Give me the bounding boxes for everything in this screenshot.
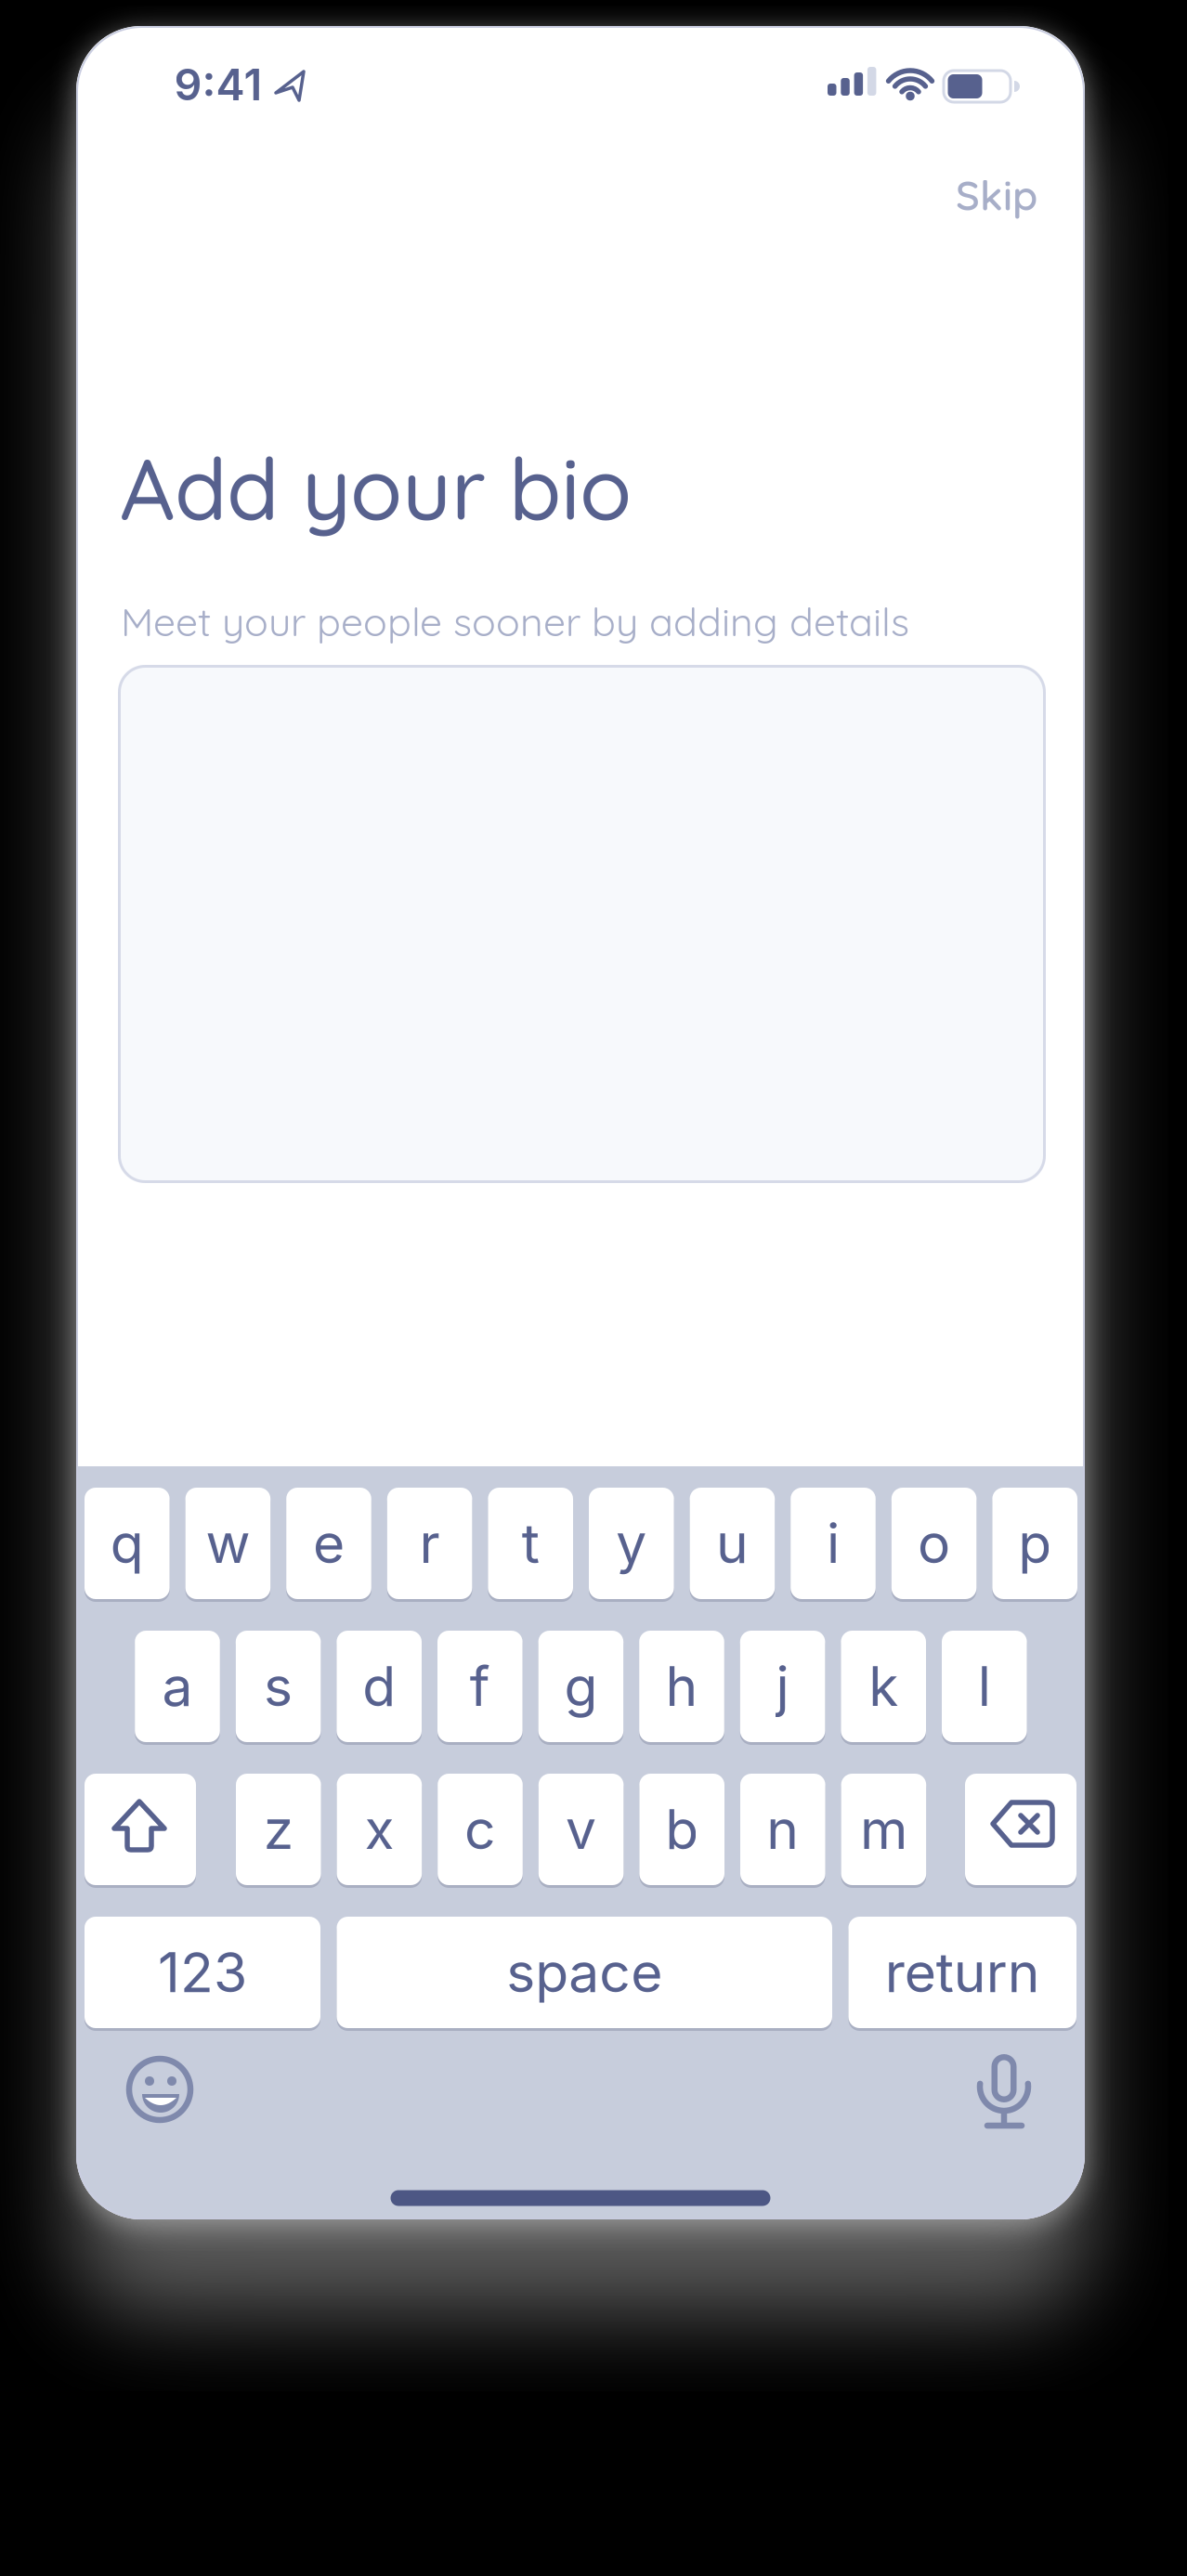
staticText: 9:41 — [174, 58, 262, 111]
staticText: s — [264, 1653, 293, 1719]
staticText: y — [616, 1510, 647, 1576]
staticText: return — [885, 1939, 1040, 2005]
staticText: o — [918, 1510, 950, 1576]
staticText: Skip — [956, 169, 1037, 221]
staticText: Meet your people sooner by adding detail… — [121, 596, 909, 646]
staticText: w — [206, 1510, 250, 1576]
staticText: z — [264, 1796, 293, 1862]
staticText: space — [506, 1939, 662, 2005]
staticText: f — [470, 1653, 490, 1719]
staticText: 123 — [158, 1939, 247, 2005]
staticText: l — [978, 1653, 991, 1719]
staticText: v — [566, 1796, 596, 1862]
staticText: q — [110, 1510, 144, 1576]
staticText: c — [464, 1796, 496, 1862]
staticText: x — [364, 1796, 394, 1862]
staticText: i — [827, 1510, 840, 1576]
staticText: k — [869, 1653, 898, 1719]
staticText: p — [1018, 1510, 1052, 1576]
staticText: g — [564, 1653, 598, 1719]
staticText: h — [665, 1653, 698, 1719]
staticText: u — [716, 1510, 749, 1576]
staticText: d — [362, 1653, 396, 1719]
staticText: Add your bio — [120, 434, 632, 541]
staticText: t — [522, 1510, 539, 1576]
staticText: a — [162, 1653, 193, 1719]
staticText: n — [767, 1796, 799, 1862]
staticText: r — [419, 1510, 440, 1576]
staticText: e — [313, 1510, 345, 1576]
staticText: b — [665, 1796, 699, 1862]
staticText: m — [860, 1796, 907, 1862]
staticText: j — [776, 1653, 789, 1719]
